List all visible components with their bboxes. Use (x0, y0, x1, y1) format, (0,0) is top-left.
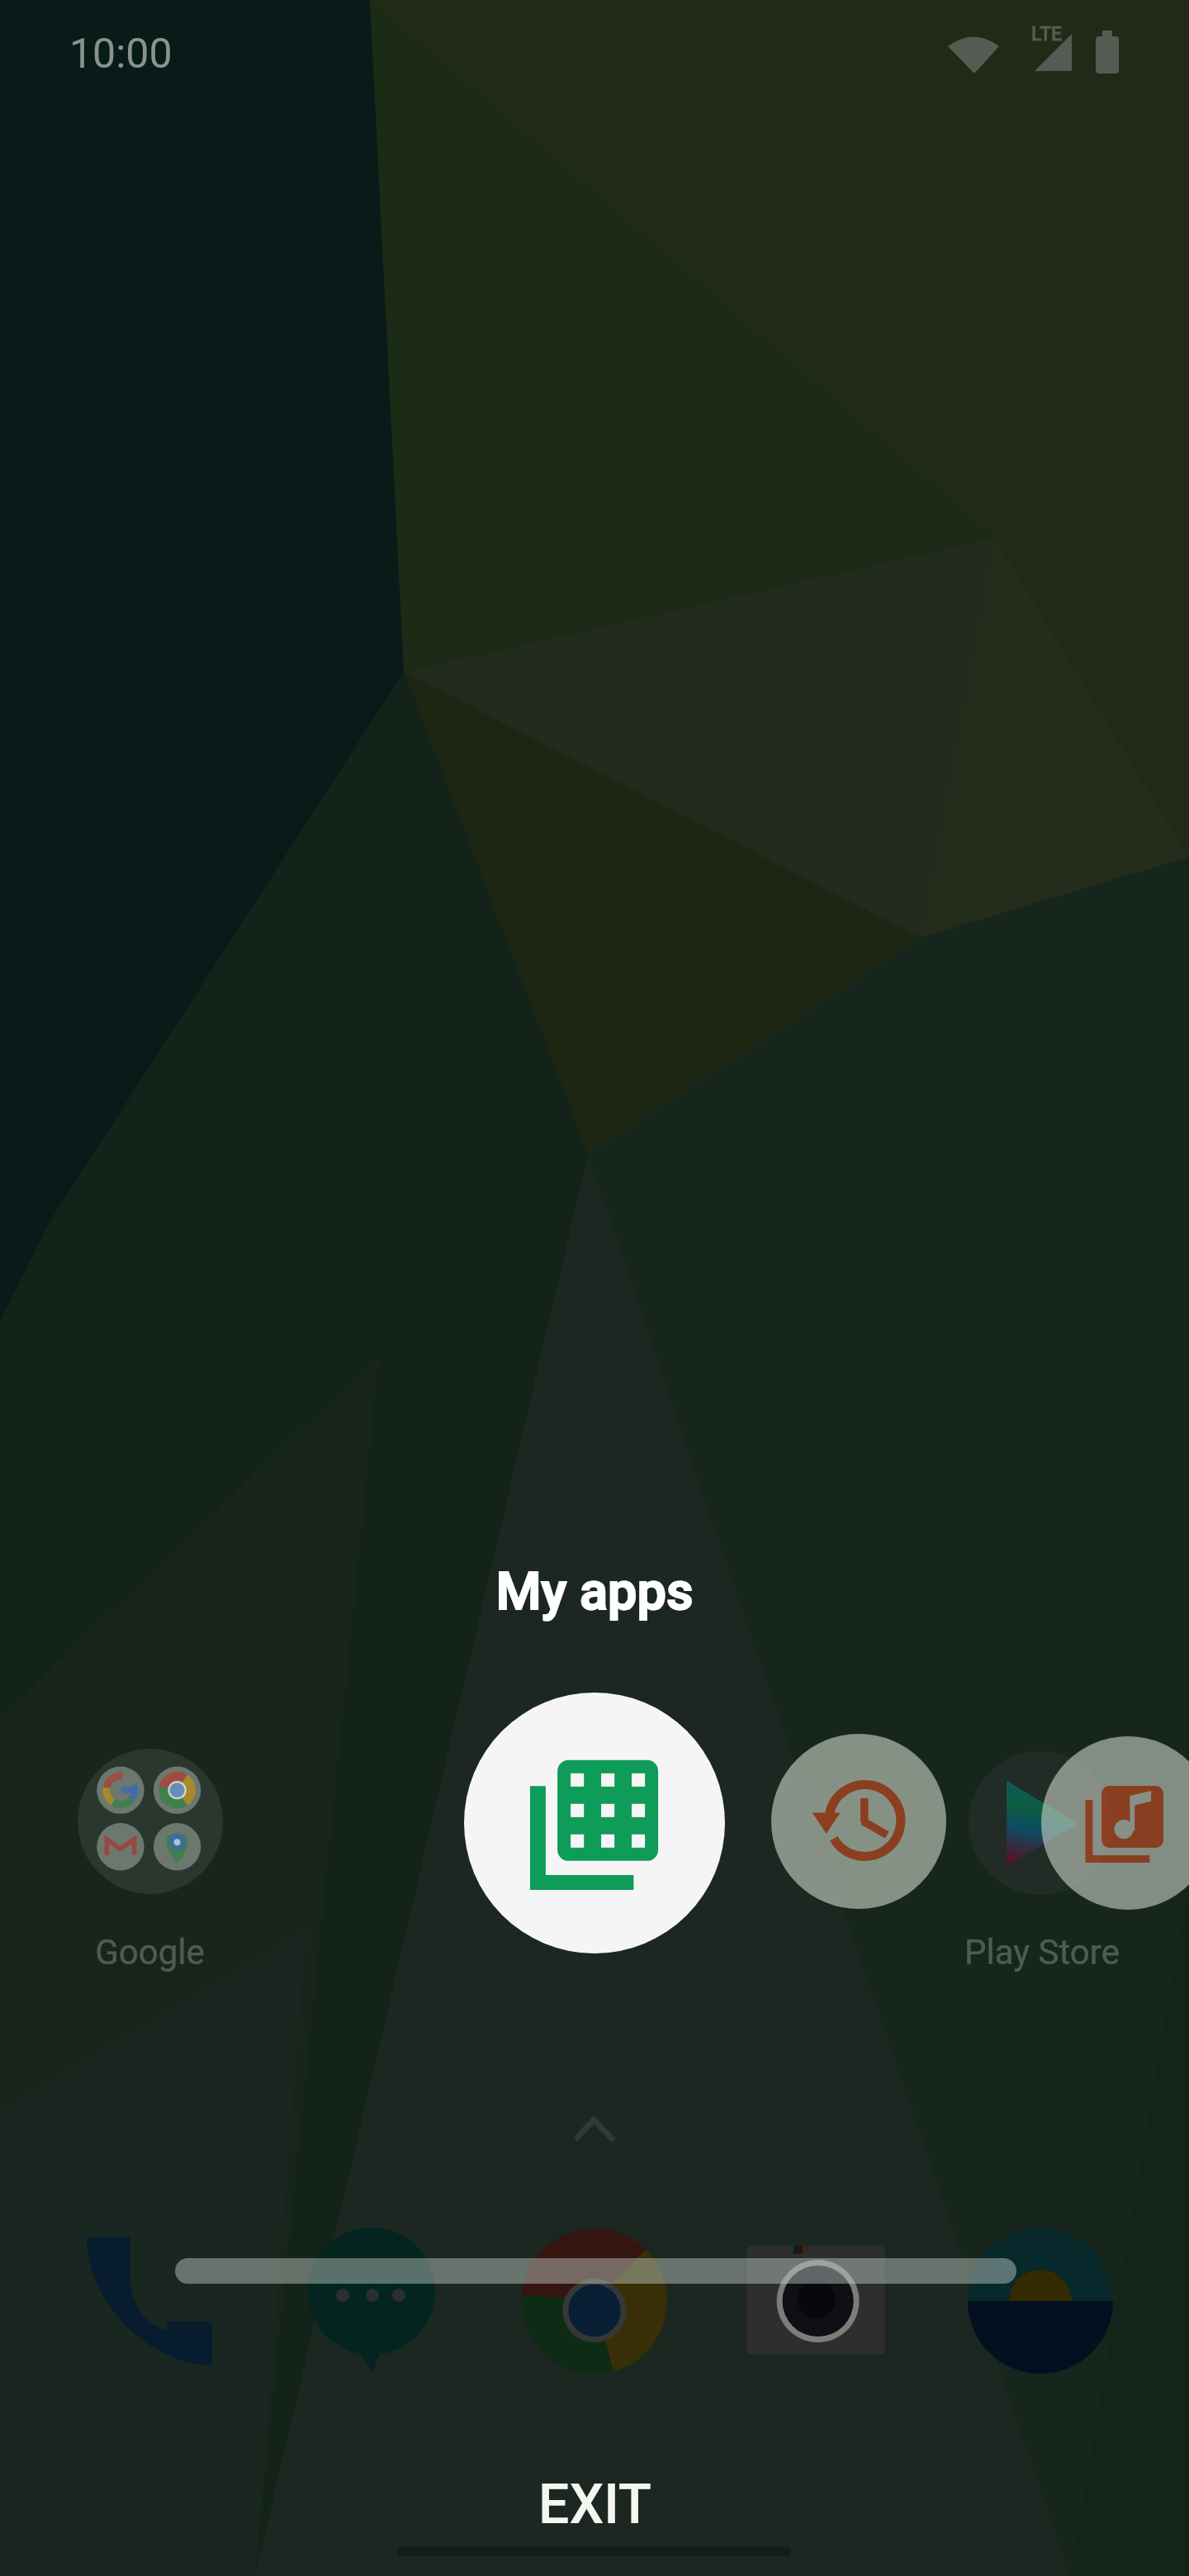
staticText: LTE (1031, 23, 1063, 45)
button[interactable]: Google folder (78, 1749, 223, 1894)
button[interactable]: Camera (743, 2228, 888, 2374)
button[interactable]: Chrome (522, 2228, 667, 2374)
button[interactable]: History (771, 1734, 946, 1909)
staticText: Google (95, 1932, 205, 1972)
button[interactable]: Phone (75, 2228, 220, 2374)
button[interactable]: Messages (298, 2228, 443, 2374)
staticText: Play Store (964, 1932, 1120, 1972)
staticText: 10:00 (69, 30, 173, 78)
button[interactable]: My apps (464, 1693, 725, 1953)
button[interactable]: Library music (1041, 1736, 1189, 1910)
button[interactable]: Weather (968, 2228, 1113, 2374)
button[interactable]: EXIT (538, 2473, 651, 2536)
button[interactable]: Open app drawer (552, 2085, 635, 2167)
button[interactable]: Play Store (969, 1751, 1112, 1895)
staticText: My apps (495, 1561, 694, 1622)
